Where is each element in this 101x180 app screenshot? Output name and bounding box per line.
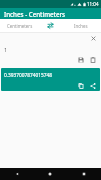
staticText: 1 bbox=[4, 46, 8, 53]
staticText: Centimeters bbox=[7, 23, 33, 29]
staticText: Inches bbox=[74, 23, 88, 29]
button[interactable]: Swap units bbox=[39, 19, 61, 32]
button[interactable]: Share result bbox=[88, 81, 97, 90]
button[interactable]: Back bbox=[0, 168, 33, 180]
button[interactable]: Copy result bbox=[76, 81, 85, 90]
staticText: Inches - Centimeters bbox=[4, 10, 66, 18]
button[interactable]: Clear bbox=[89, 34, 98, 43]
button[interactable]: Centimeters bbox=[0, 19, 39, 32]
button[interactable]: Recent apps bbox=[67, 168, 101, 180]
button[interactable]: 0.3937007874015748 bbox=[1, 68, 100, 91]
button[interactable]: Paste bbox=[88, 55, 98, 65]
staticText: 11:04 bbox=[87, 1, 99, 7]
button[interactable]: Home bbox=[33, 168, 67, 180]
button[interactable]: 1 bbox=[0, 44, 101, 54]
button[interactable]: Save bbox=[76, 55, 86, 65]
button[interactable]: Inches bbox=[61, 19, 101, 32]
staticText: 0.3937007874015748 bbox=[4, 72, 52, 79]
